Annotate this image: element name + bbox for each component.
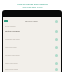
- staticText: Section heading: [5, 30, 55, 33]
- button[interactable]: Brand logo: [4, 20, 8, 22]
- staticText: Another list item: [5, 38, 55, 41]
- staticText: small caption: [5, 25, 16, 27]
- staticText: Section name: [25, 20, 38, 23]
- button[interactable]: Fifth row label: [3, 59, 61, 67]
- button[interactable]: Section heading: [3, 27, 61, 35]
- button[interactable]: List row label: [3, 43, 61, 51]
- button[interactable]: Sixth row label: [3, 67, 61, 72]
- staticText: Fourth row label: [5, 54, 55, 57]
- staticText: Now all books with flexible: [17, 2, 48, 5]
- button[interactable]: Profile: [55, 20, 58, 23]
- staticText: List row label: [5, 46, 55, 49]
- staticText: split type with 3 plus: [22, 6, 43, 9]
- staticText: Fifth row label: [5, 62, 55, 65]
- button[interactable]: Fourth row label: [3, 51, 61, 59]
- staticText: Sixth row label: [5, 68, 55, 71]
- button[interactable]: Another list item: [3, 35, 61, 43]
